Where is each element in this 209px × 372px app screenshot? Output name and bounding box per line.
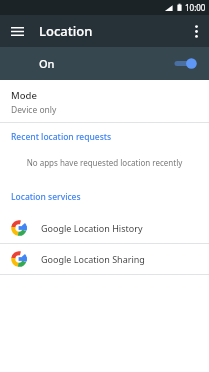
- button[interactable]: Open navigation menu: [5, 19, 29, 43]
- button[interactable]: Google Location History: [0, 213, 209, 243]
- staticText: Google Location Sharing: [41, 253, 145, 265]
- button[interactable]: Recent location requests: [0, 130, 209, 144]
- staticText: 10:00: [185, 2, 206, 13]
- button[interactable]: On: [0, 47, 209, 80]
- staticText: Mode: [11, 89, 37, 102]
- staticText: Device only: [11, 104, 57, 116]
- button[interactable]: More options: [184, 19, 208, 43]
- staticText: Location: [39, 22, 93, 40]
- staticText: Google Location History: [41, 222, 143, 234]
- button[interactable]: Location services: [0, 190, 209, 204]
- staticText: No apps have requested location recently: [10, 157, 199, 168]
- staticText: On: [39, 56, 55, 71]
- button[interactable]: Google Location Sharing: [0, 244, 209, 274]
- button[interactable]: Mode: [0, 87, 209, 122]
